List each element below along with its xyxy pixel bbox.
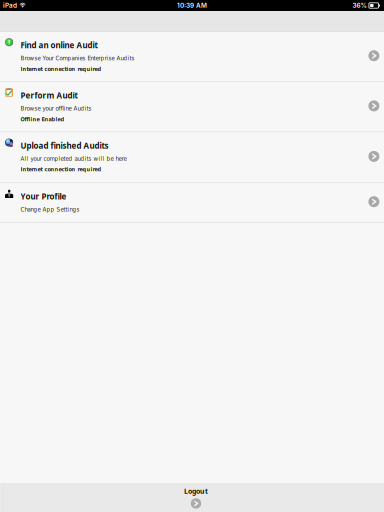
staticText: Internet connection required xyxy=(21,166,102,173)
staticText: Browse Your Companies Enterprise Audits xyxy=(21,55,135,62)
button[interactable]: Find an online Audit xyxy=(0,32,384,81)
button[interactable]: Your Profile xyxy=(0,183,384,222)
button[interactable]: Upload finished Audits xyxy=(0,132,384,182)
staticText: Perform Audit xyxy=(21,90,78,101)
staticText: Internet connection required xyxy=(21,66,102,72)
button[interactable]: Logout xyxy=(176,483,216,512)
button[interactable]: Perform Audit xyxy=(0,82,384,132)
staticText: Browse your offline Audits xyxy=(21,105,92,112)
staticText: All your completed audits will be here xyxy=(21,155,127,162)
staticText: Offline Enabled xyxy=(21,116,65,122)
staticText: Upload finished Audits xyxy=(21,140,109,151)
staticText: 10:39 AM xyxy=(177,2,207,9)
staticText: 36% xyxy=(352,2,366,9)
staticText: Find an online Audit xyxy=(21,40,98,51)
staticText: iPad xyxy=(3,2,17,9)
staticText: Change App Settings xyxy=(21,206,80,213)
staticText: Logout xyxy=(184,486,208,496)
staticText: Your Profile xyxy=(21,191,67,202)
